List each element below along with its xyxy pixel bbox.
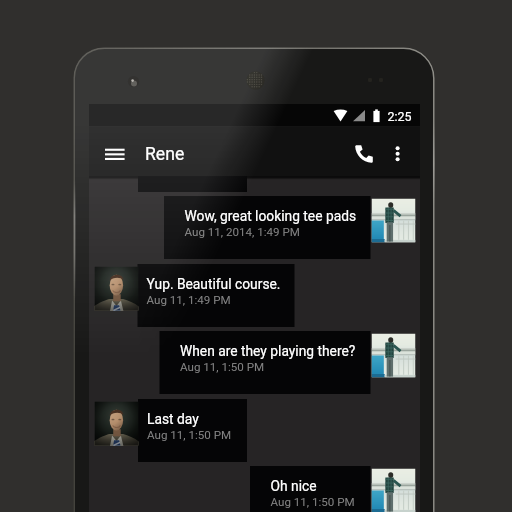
button[interactable] — [89, 399, 420, 462]
button[interactable] — [89, 264, 420, 327]
button[interactable] — [89, 466, 420, 512]
button[interactable]: Call — [353, 142, 377, 166]
button[interactable]: More options — [386, 142, 410, 166]
button[interactable] — [145, 129, 215, 175]
button[interactable] — [89, 196, 420, 259]
button[interactable] — [89, 176, 420, 192]
button[interactable] — [89, 331, 420, 394]
button[interactable]: Navigation drawer — [105, 130, 149, 174]
